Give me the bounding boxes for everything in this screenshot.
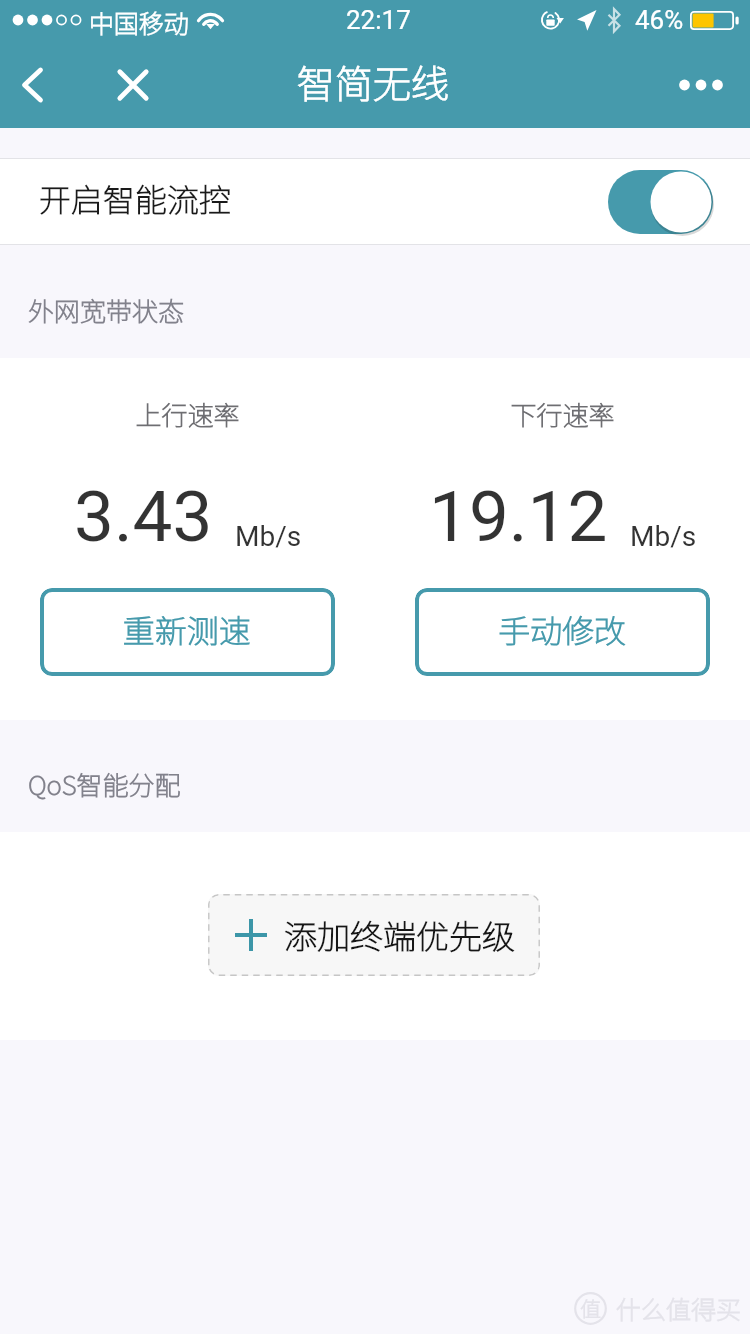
- staticText: 22:17: [346, 5, 411, 35]
- button[interactable]: 开启智能流控: [0, 158, 750, 245]
- staticText: Mb/s: [235, 520, 302, 553]
- staticText: 手动修改: [498, 606, 627, 652]
- button[interactable]: Close: [99, 51, 163, 121]
- button[interactable]: Toggle smart flow control: [608, 170, 713, 234]
- staticText: 开启智能流控: [39, 175, 232, 221]
- staticText: Mb/s: [630, 520, 697, 553]
- button[interactable]: Back: [4, 51, 64, 121]
- staticText: 值: [580, 1293, 601, 1323]
- staticText: 46%: [635, 5, 684, 35]
- button[interactable]: 添加终端优先级: [208, 894, 540, 976]
- staticText: 上行速率: [40, 395, 335, 433]
- staticText: 智简无线: [0, 54, 748, 109]
- button[interactable]: More options: [664, 50, 736, 120]
- staticText: 下行速率: [415, 395, 710, 433]
- staticText: 中国移动: [89, 4, 190, 40]
- staticText: 添加终端优先级: [284, 911, 515, 959]
- staticText: 3.43: [74, 475, 213, 558]
- button[interactable]: 重新测速: [40, 588, 335, 676]
- staticText: 什么值得买: [616, 1290, 742, 1326]
- staticText: 重新测速: [123, 606, 252, 652]
- button[interactable]: 手动修改: [415, 588, 710, 676]
- staticText: 外网宽带状态: [28, 291, 185, 329]
- staticText: 19.12: [429, 475, 608, 558]
- staticText: QoS智能分配: [28, 765, 181, 803]
